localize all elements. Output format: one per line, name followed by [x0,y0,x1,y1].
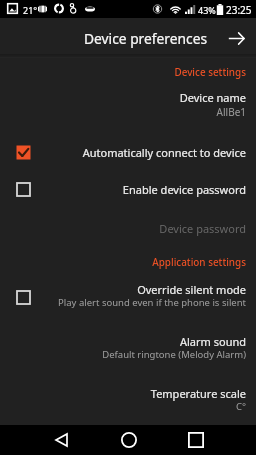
button[interactable]: Recent apps [180,425,212,455]
staticText: Device password [0,221,246,236]
staticText: Default ringtone (Melody Alarm) [0,348,246,361]
staticText: Application settings [0,255,246,268]
button[interactable]: Forward [226,28,246,48]
staticText: Device name [0,90,246,105]
staticText: 43% [198,4,216,16]
staticText: 21° [23,4,38,16]
staticText: Temperature scale [0,386,246,401]
button[interactable]: Temperature scale [0,379,256,415]
button[interactable]: Automatically connect to device [0,136,256,168]
button[interactable]: Home [113,425,145,455]
staticText: Device settings [0,65,246,78]
button[interactable]: Device settings [0,62,256,84]
staticText: Alarm sound [0,334,246,349]
staticText: 23:25 [226,3,252,17]
button[interactable]: Enable device password [0,173,256,205]
button[interactable]: Device name [0,86,256,124]
button[interactable]: Back [45,425,77,455]
staticText: Override silent mode [0,282,246,297]
staticText: Enable device password [0,182,246,197]
button[interactable]: Override silent mode [0,275,256,311]
button[interactable]: Application settings [0,252,256,274]
button[interactable]: Alarm sound [0,327,256,363]
staticText: C° [0,400,246,413]
staticText: Play alert sound even if the phone is si… [0,296,246,309]
staticText: Automatically connect to device [0,145,246,160]
staticText: Device preferences [84,29,208,48]
staticText: AllBe1 [0,105,246,119]
